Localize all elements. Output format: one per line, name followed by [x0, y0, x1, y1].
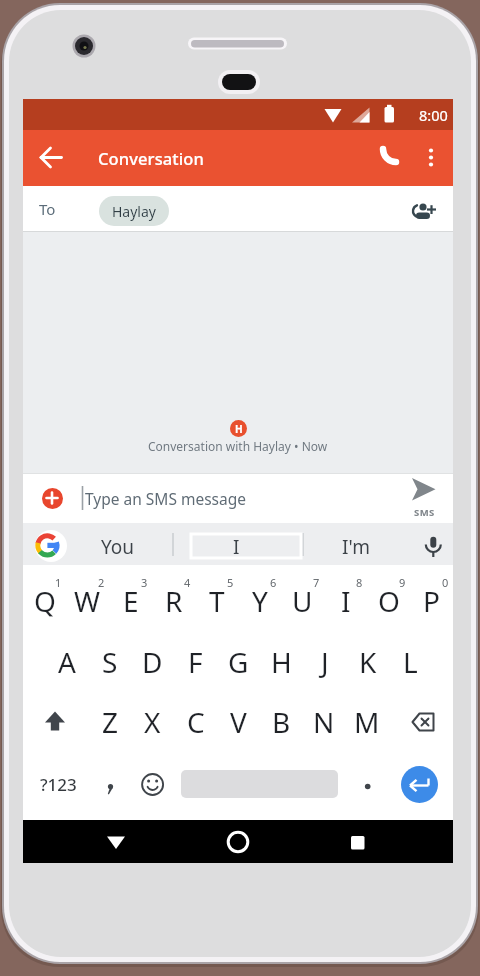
staticText: U	[292, 582, 313, 620]
button[interactable]: I	[324, 575, 367, 627]
staticText: 4	[184, 575, 191, 590]
button[interactable]	[216, 820, 260, 863]
staticText: O	[378, 582, 400, 620]
staticText: P	[423, 582, 440, 620]
staticText: M	[354, 703, 380, 741]
staticText: 3	[141, 575, 148, 590]
staticText: N	[313, 703, 335, 741]
button[interactable]: M	[345, 696, 388, 748]
button[interactable]: X	[131, 696, 174, 748]
button[interactable]: O	[367, 575, 410, 627]
button[interactable]: Y	[238, 575, 281, 627]
button[interactable]: Type an SMS message	[85, 473, 246, 523]
staticText: J	[321, 643, 329, 681]
staticText: 1	[55, 575, 62, 590]
staticText: Q	[34, 582, 56, 620]
button[interactable]: V	[217, 696, 260, 748]
staticText: H	[235, 422, 243, 436]
button[interactable]	[415, 523, 453, 565]
button[interactable]	[83, 523, 153, 565]
staticText: B	[272, 703, 291, 741]
staticText: K	[359, 643, 377, 681]
staticText: T	[209, 582, 225, 620]
staticText: H	[271, 643, 292, 681]
staticText: 2	[98, 575, 105, 590]
staticText: Y	[252, 582, 268, 620]
button[interactable]	[400, 696, 446, 748]
staticText: R	[165, 582, 183, 620]
staticText: D	[142, 643, 163, 681]
button[interactable]: T	[195, 575, 238, 627]
button[interactable]: W	[66, 575, 109, 627]
button[interactable]: H	[260, 636, 303, 688]
button[interactable]	[413, 137, 449, 179]
button[interactable]	[42, 488, 63, 509]
staticText: You	[101, 534, 135, 558]
button[interactable]: Z	[89, 696, 132, 748]
button[interactable]: R	[152, 575, 195, 627]
button[interactable]	[401, 766, 438, 803]
staticText: 7	[313, 575, 320, 590]
button[interactable]	[35, 530, 67, 562]
button[interactable]: S	[88, 636, 131, 688]
staticText: F	[188, 643, 203, 681]
staticText: C	[187, 703, 205, 741]
staticText: S	[102, 643, 118, 681]
button[interactable]: J	[303, 636, 346, 688]
staticText: Conversation with Haylay • Now	[148, 438, 328, 454]
button[interactable]	[191, 523, 301, 565]
button[interactable]: G	[217, 636, 260, 688]
button[interactable]: To	[23, 186, 453, 232]
staticText: Haylay	[112, 202, 156, 221]
button[interactable]	[346, 762, 390, 806]
staticText: E	[123, 582, 139, 620]
button[interactable]: Q	[23, 575, 66, 627]
staticText: ?123	[40, 773, 77, 796]
button[interactable]: L	[389, 636, 432, 688]
staticText: I	[341, 582, 351, 620]
button[interactable]	[313, 523, 403, 565]
button[interactable]: A	[45, 636, 88, 688]
button[interactable]: ?123	[31, 762, 86, 806]
staticText: I'm	[342, 534, 370, 558]
staticText: A	[58, 643, 76, 681]
button[interactable]: N	[302, 696, 345, 748]
staticText: W	[74, 582, 101, 620]
staticText: 8	[356, 575, 363, 590]
button[interactable]: D	[131, 636, 174, 688]
button[interactable]: E	[109, 575, 152, 627]
staticText: 0	[442, 575, 449, 590]
button[interactable]	[405, 473, 449, 523]
button[interactable]	[131, 762, 175, 806]
staticText: Type an SMS message	[85, 488, 246, 509]
staticText: Conversation	[98, 147, 204, 169]
button[interactable]	[335, 820, 379, 863]
button[interactable]: B	[260, 696, 303, 748]
button[interactable]: P	[410, 575, 453, 627]
staticText: 5	[227, 575, 234, 590]
button[interactable]	[88, 762, 132, 806]
button[interactable]	[33, 696, 78, 748]
staticText: V	[230, 703, 247, 741]
staticText: X	[144, 703, 161, 741]
staticText: 6	[270, 575, 277, 590]
staticText: I	[233, 534, 240, 558]
staticText: To	[39, 199, 56, 219]
staticText: 8:00	[419, 105, 448, 125]
button[interactable]	[31, 137, 73, 179]
button[interactable]	[366, 137, 408, 179]
button[interactable]: F	[174, 636, 217, 688]
button[interactable]: K	[346, 636, 389, 688]
staticText: Z	[102, 703, 119, 741]
staticText: L	[403, 643, 418, 681]
button[interactable]: U	[281, 575, 324, 627]
button[interactable]: Haylay	[99, 196, 169, 226]
button[interactable]	[94, 820, 138, 863]
staticText: 9	[399, 575, 406, 590]
staticText: SMS	[414, 506, 435, 519]
button[interactable]: C	[174, 696, 217, 748]
button[interactable]	[411, 190, 449, 228]
staticText: G	[228, 643, 249, 681]
